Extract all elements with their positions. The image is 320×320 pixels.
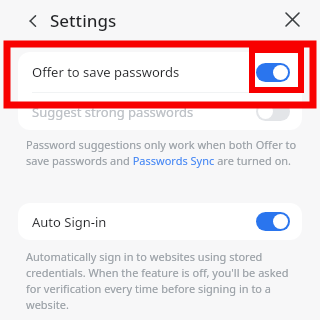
staticText: Automatically sign in to websites using … [26, 249, 298, 312]
button[interactable]: Back [20, 8, 46, 34]
button[interactable]: Off [256, 102, 290, 121]
staticText: Suggest strong passwords [32, 103, 256, 121]
staticText: Auto Sign-in [32, 213, 256, 231]
staticText: Offer to save passwords [32, 63, 256, 81]
staticText: Password suggestions only work when both… [26, 137, 298, 168]
button[interactable]: On [256, 63, 290, 82]
staticText: Settings [50, 9, 117, 32]
button[interactable]: Close [279, 6, 305, 32]
button[interactable]: Auto Sign-in [18, 203, 302, 240]
button[interactable]: Offer to save passwords [18, 52, 302, 92]
button[interactable]: Suggest strong passwords [18, 93, 302, 130]
button[interactable]: On [256, 212, 290, 231]
